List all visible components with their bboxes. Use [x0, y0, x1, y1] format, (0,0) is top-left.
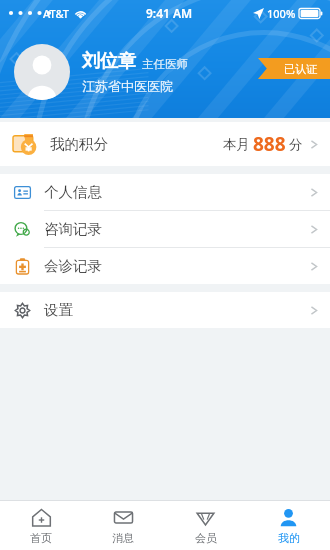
- button[interactable]: 咨询记录: [0, 211, 330, 247]
- staticText: 我的积分: [50, 135, 108, 153]
- staticText: 咨询记录: [44, 220, 102, 238]
- button[interactable]: 会诊记录: [0, 248, 330, 284]
- staticText: 分: [289, 136, 303, 153]
- button[interactable]: 个人信息: [0, 174, 330, 210]
- button[interactable]: 刘位章: [0, 30, 330, 114]
- button[interactable]: 我的积分: [0, 122, 330, 166]
- button[interactable]: 已认证: [258, 58, 330, 79]
- staticText: 设置: [44, 301, 73, 319]
- staticText: 888: [253, 131, 286, 157]
- button[interactable]: 会员: [164, 501, 247, 550]
- button[interactable]: 消息: [82, 501, 164, 550]
- staticText: 100%: [267, 6, 296, 21]
- staticText: 主任医师: [142, 57, 188, 71]
- button[interactable]: 首页: [0, 501, 82, 550]
- staticText: 首页: [30, 531, 52, 545]
- staticText: 刘位章: [82, 50, 136, 73]
- staticText: 个人信息: [44, 183, 102, 201]
- staticText: 已认证: [284, 62, 317, 76]
- staticText: 消息: [112, 531, 134, 545]
- staticText: AT&T: [43, 6, 70, 21]
- button[interactable]: 设置: [0, 292, 330, 328]
- button[interactable]: 我的: [247, 501, 330, 550]
- staticText: 会诊记录: [44, 257, 102, 275]
- staticText: 会员: [195, 531, 217, 545]
- staticText: 9:41 AM: [146, 5, 193, 21]
- staticText: 我的: [278, 531, 300, 545]
- staticText: 江苏省中医医院: [82, 78, 173, 94]
- staticText: 本月: [223, 136, 250, 153]
